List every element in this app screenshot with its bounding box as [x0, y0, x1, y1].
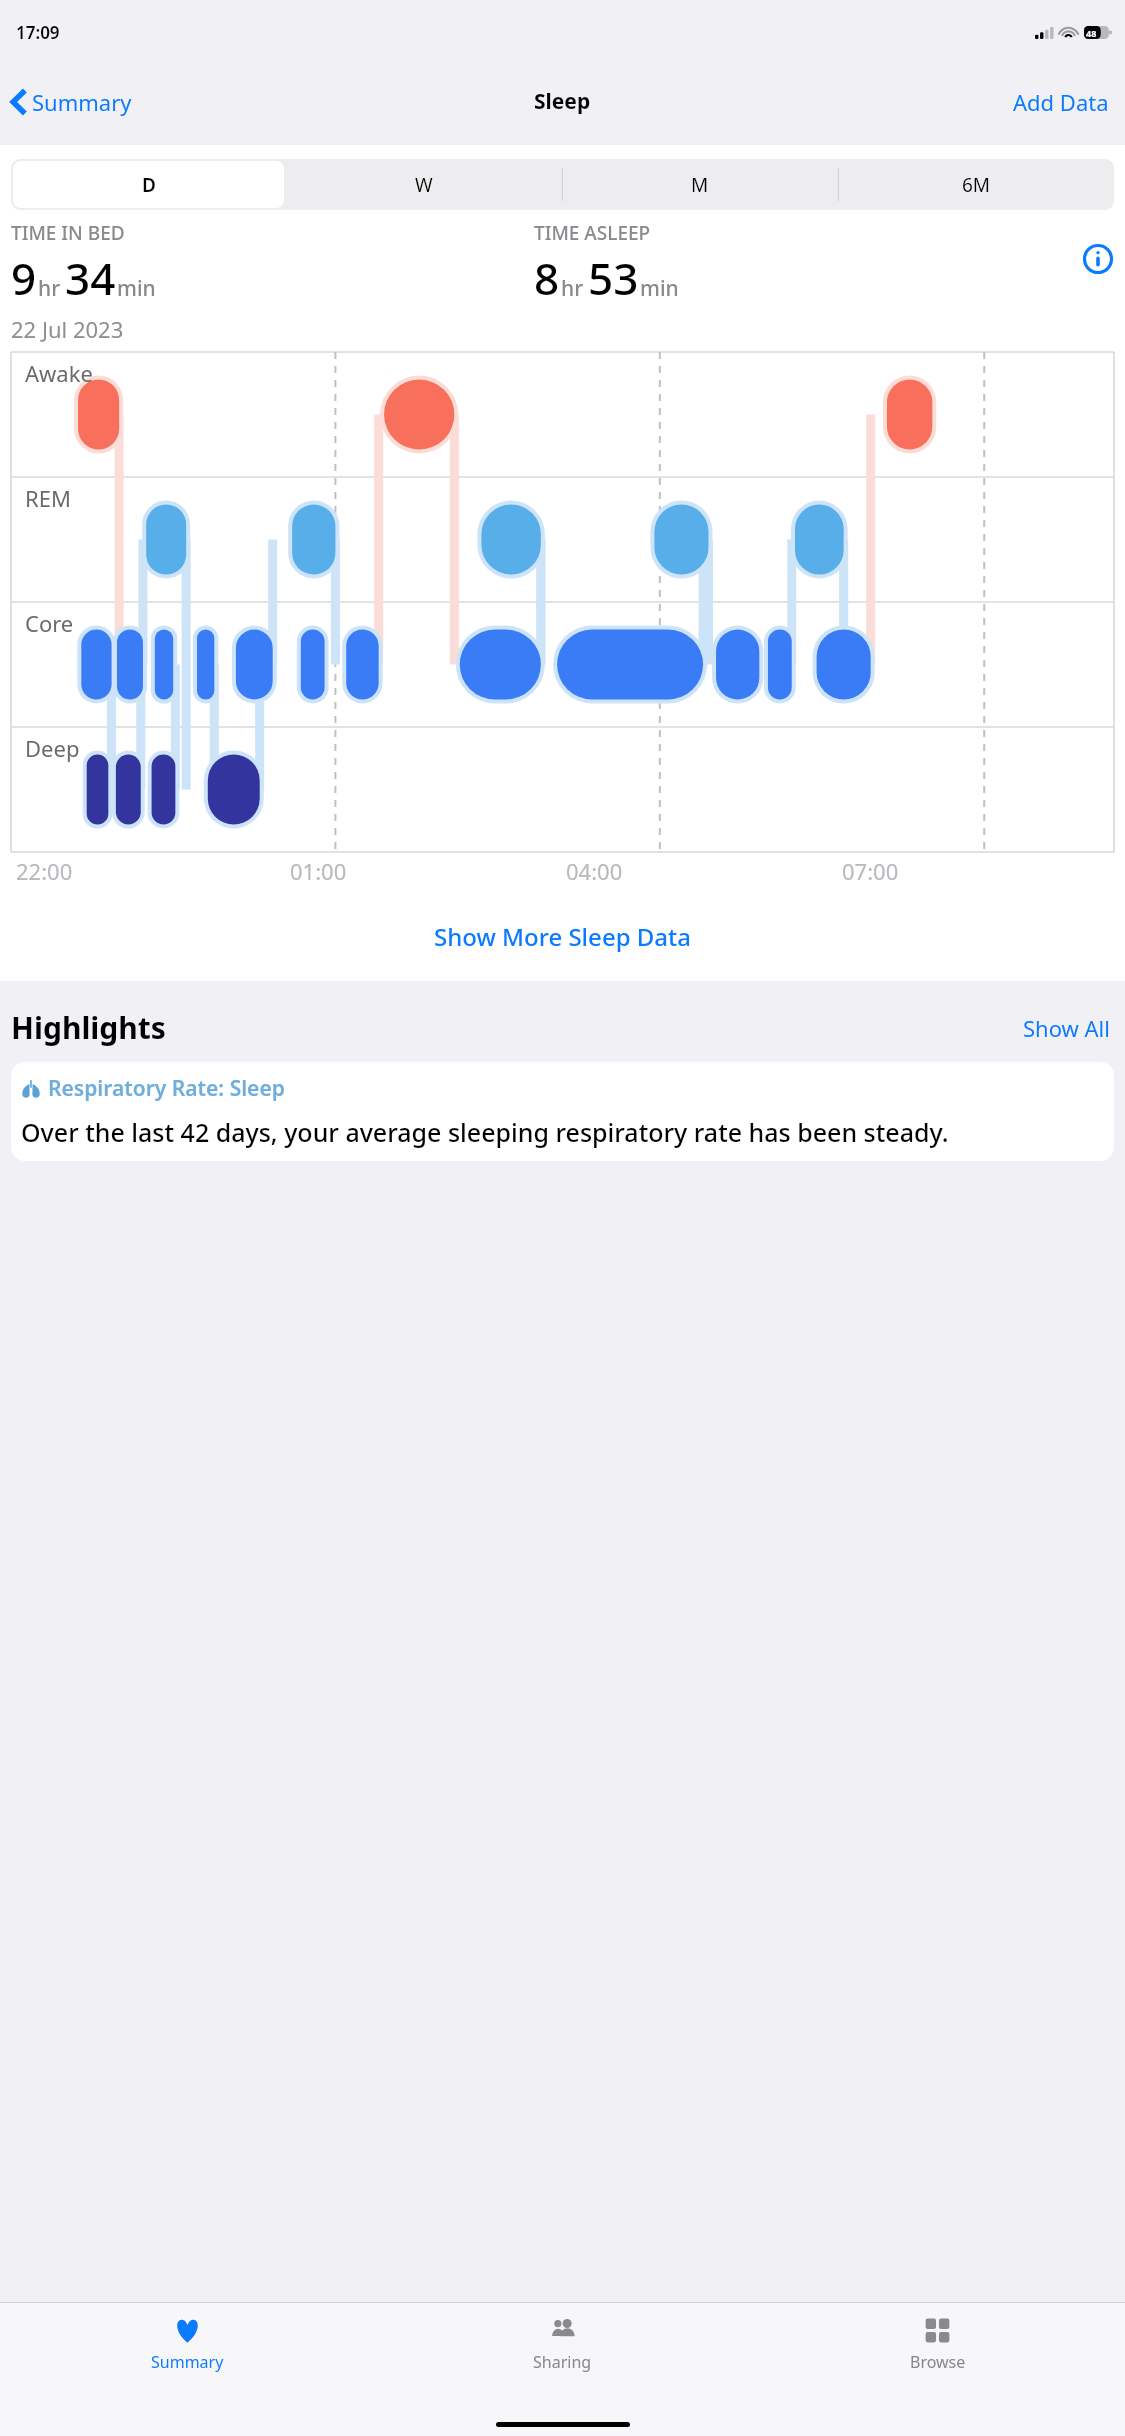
- staticText: 04:00: [566, 856, 623, 886]
- staticText: TIME IN BED: [11, 220, 125, 246]
- staticText: REM: [25, 483, 71, 513]
- staticText: 22:00: [16, 856, 73, 886]
- staticText: hr: [561, 274, 584, 303]
- staticText: TIME ASLEEP: [534, 220, 651, 246]
- staticText: min: [640, 274, 679, 303]
- staticText: 9: [11, 248, 37, 308]
- staticText: 17:09: [16, 21, 60, 44]
- button[interactable]: Respiratory Rate: Sleep: [11, 1062, 1114, 1161]
- button[interactable]: Summary: [0, 2312, 375, 2377]
- staticText: Awake: [25, 358, 93, 388]
- button[interactable]: M: [562, 159, 838, 210]
- button[interactable]: Sharing: [375, 2312, 750, 2377]
- button[interactable]: Add Data: [997, 79, 1125, 125]
- staticText: 22 Jul 2023: [11, 314, 124, 344]
- staticText: 07:00: [842, 856, 899, 886]
- button[interactable]: Summary: [6, 81, 138, 123]
- staticText: W: [415, 172, 433, 198]
- staticText: Over the last 42 days, your average slee…: [21, 1115, 949, 1149]
- staticText: min: [117, 274, 156, 303]
- staticText: Sharing: [533, 2351, 592, 2373]
- staticText: Show More Sleep Data: [434, 920, 691, 953]
- button[interactable]: 6M: [838, 159, 1114, 210]
- staticText: hr: [38, 274, 61, 303]
- staticText: Browse: [910, 2351, 966, 2373]
- button[interactable]: Show All: [1019, 1009, 1114, 1047]
- button[interactable]: Show More Sleep Data: [0, 914, 1125, 959]
- staticText: Sleep: [534, 87, 591, 116]
- staticText: D: [142, 172, 156, 198]
- button[interactable]: D: [11, 159, 286, 210]
- staticText: Summary: [151, 2351, 224, 2373]
- button[interactable]: W: [286, 159, 562, 210]
- staticText: Deep: [25, 733, 80, 763]
- staticText: Core: [25, 608, 74, 638]
- staticText: M: [691, 172, 709, 198]
- staticText: 6M: [962, 172, 991, 198]
- button[interactable]: Information: [1083, 244, 1113, 274]
- staticText: Respiratory Rate: Sleep: [48, 1074, 285, 1103]
- staticText: 01:00: [290, 856, 347, 886]
- staticText: Summary: [32, 87, 132, 117]
- staticText: 34: [65, 248, 116, 308]
- staticText: 8: [534, 248, 560, 308]
- staticText: Highlights: [11, 1007, 166, 1048]
- staticText: 48: [1086, 27, 1097, 39]
- button[interactable]: Browse: [750, 2312, 1125, 2377]
- staticText: 53: [588, 248, 639, 308]
